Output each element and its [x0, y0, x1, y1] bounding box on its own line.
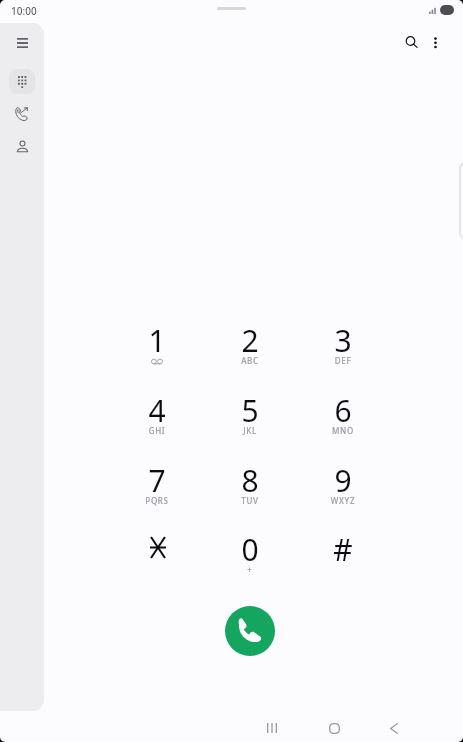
button[interactable]: Home — [319, 713, 349, 742]
staticText: ABC — [216, 355, 284, 366]
staticText: JKL — [216, 425, 284, 436]
staticText: 3 — [309, 320, 377, 361]
staticText: TUV — [216, 495, 284, 506]
button[interactable]: 4 — [123, 378, 191, 440]
staticText: 9 — [309, 460, 377, 501]
button[interactable]: Edge panel — [459, 162, 463, 239]
button[interactable]: Search — [397, 28, 427, 58]
button[interactable]: Star — [123, 517, 191, 579]
staticText: 6 — [309, 390, 377, 431]
button[interactable]: # — [309, 517, 377, 579]
button[interactable]: 3 — [309, 308, 377, 370]
button[interactable]: 1 — [123, 308, 191, 370]
button[interactable]: Contacts — [0, 130, 44, 162]
button[interactable]: More options — [420, 28, 450, 58]
staticText: # — [309, 529, 377, 570]
button[interactable]: Recents — [0, 97, 44, 129]
button[interactable]: Menu — [0, 26, 44, 60]
staticText: 8 — [216, 460, 284, 501]
button[interactable]: 7 — [123, 448, 191, 510]
staticText: 1 — [123, 320, 191, 361]
button[interactable]: 2 — [216, 308, 284, 370]
staticText: 5 — [216, 390, 284, 431]
staticText: + — [216, 564, 284, 575]
button[interactable]: 8 — [216, 448, 284, 510]
staticText: GHI — [123, 425, 191, 436]
button[interactable]: Recent apps — [257, 713, 287, 742]
button[interactable]: Keypad — [9, 69, 35, 94]
button[interactable]: 5 — [216, 378, 284, 440]
staticText: PQRS — [123, 495, 191, 506]
button[interactable]: 9 — [309, 448, 377, 510]
staticText: 7 — [123, 460, 191, 501]
staticText: MNO — [309, 425, 377, 436]
button[interactable]: Back — [379, 713, 409, 742]
staticText: 0 — [216, 529, 284, 570]
staticText: 2 — [216, 320, 284, 361]
staticText: WXYZ — [309, 495, 377, 506]
staticText: 10:00 — [11, 4, 37, 18]
button[interactable]: 0 — [216, 517, 284, 579]
staticText: 4 — [123, 390, 191, 431]
button[interactable]: 6 — [309, 378, 377, 440]
button[interactable]: Call — [225, 606, 275, 656]
staticText: DEF — [309, 355, 377, 366]
